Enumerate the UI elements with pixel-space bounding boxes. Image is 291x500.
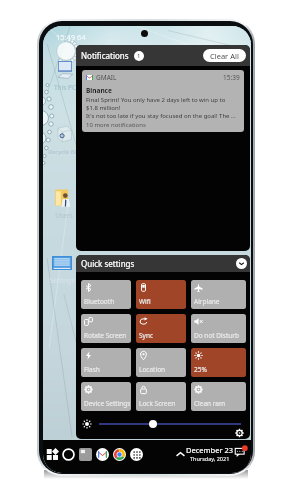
button[interactable]: Bluetooth xyxy=(81,280,131,309)
button[interactable]: Gmail xyxy=(96,448,109,461)
staticText: Quick settings xyxy=(81,258,135,269)
staticText: Airplane xyxy=(194,297,220,306)
staticText: Bluetooth xyxy=(84,297,115,306)
staticText: $1.8 million! xyxy=(86,104,121,112)
button[interactable]: Start xyxy=(46,448,59,461)
button[interactable]: Task view xyxy=(79,448,92,461)
staticText: Sync xyxy=(139,331,154,340)
staticText: Wifi xyxy=(139,297,151,306)
staticText: Recycle Bin xyxy=(45,148,83,156)
button[interactable]: Sync xyxy=(136,314,186,343)
staticText: 1 xyxy=(137,52,141,60)
staticText: 15:39 xyxy=(223,73,240,82)
button[interactable]: Do not Disturb xyxy=(191,314,246,343)
staticText: Rotate Screen xyxy=(84,331,127,340)
staticText: Device Settings xyxy=(84,399,130,408)
staticText: Users xyxy=(47,211,81,220)
button[interactable]: Location xyxy=(136,348,186,377)
staticText: Final Sprint! You only have 2 days left … xyxy=(86,96,226,104)
button[interactable]: Clean ram xyxy=(191,382,246,411)
button[interactable]: Show hidden icons xyxy=(175,449,186,460)
staticText: Binance xyxy=(86,86,112,95)
button[interactable]: Chrome xyxy=(113,448,126,461)
staticText: Lock Screen xyxy=(139,399,176,408)
button[interactable]: Airplane xyxy=(191,280,246,309)
staticText: GMAIL xyxy=(96,73,117,82)
staticText: 25% xyxy=(194,365,207,374)
button[interactable]: Search xyxy=(62,448,75,461)
staticText: Clear All xyxy=(210,51,239,61)
staticText: It's not too late if you stay focused on… xyxy=(86,112,236,120)
button[interactable]: Rotate Screen xyxy=(81,314,131,343)
button[interactable]: All apps xyxy=(130,448,143,461)
staticText: Settings xyxy=(45,276,79,285)
button[interactable]: Notifications xyxy=(235,446,247,458)
button[interactable]: Wifi xyxy=(136,280,186,309)
button[interactable]: Clear All xyxy=(203,49,246,62)
button[interactable]: Collapse xyxy=(236,258,247,269)
button[interactable]: Flash xyxy=(81,348,131,377)
staticText: Flash xyxy=(84,365,100,374)
staticText: 10 more notifications xyxy=(86,121,146,129)
staticText: Location xyxy=(139,365,166,374)
button[interactable]: Device Settings xyxy=(81,382,131,411)
staticText: Notifications xyxy=(81,50,129,61)
button[interactable]: Lock Screen xyxy=(136,382,186,411)
button[interactable]: 25% xyxy=(191,348,246,377)
staticText: This PC xyxy=(48,83,82,92)
button[interactable]: GMAIL xyxy=(82,70,244,132)
staticText: Clean ram xyxy=(194,399,226,408)
staticText: December 23 xyxy=(186,445,234,455)
staticText: Do not Disturb xyxy=(194,331,239,340)
staticText: 15:49 64 xyxy=(56,32,86,42)
button[interactable]: Settings xyxy=(235,431,244,435)
button[interactable]: December 23 xyxy=(186,445,234,462)
staticText: Thursday, 2021 xyxy=(190,455,230,462)
